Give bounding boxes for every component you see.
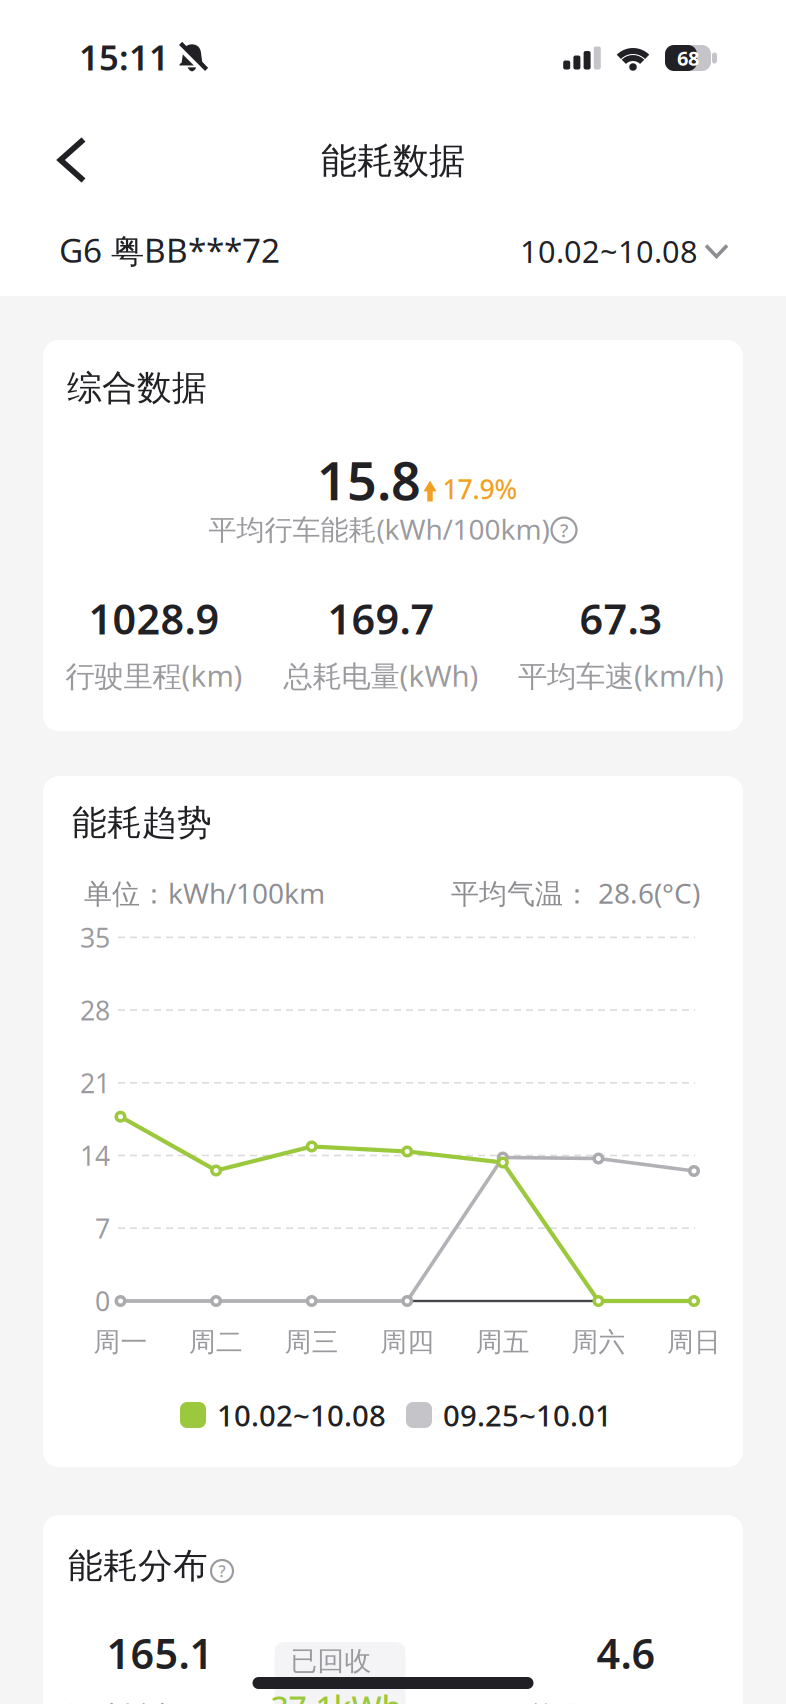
staticText: 周五: [476, 1326, 530, 1358]
staticText: 周日: [667, 1326, 721, 1358]
staticText: 总耗电量(kWh): [283, 656, 478, 695]
staticText: 能耗数据: [321, 139, 465, 183]
staticText: 平均行车能耗(kWh/100km): [208, 510, 549, 548]
staticText: 21: [80, 1065, 110, 1100]
staticText: 165.1: [106, 1626, 213, 1680]
staticText: 周六: [571, 1326, 625, 1358]
staticText: 4.6: [596, 1626, 655, 1680]
staticText: 能耗分布: [68, 1545, 208, 1587]
staticText: 周三: [285, 1326, 339, 1358]
staticText: 14: [80, 1138, 110, 1173]
staticText: 行驶里程(km): [65, 656, 242, 695]
staticText: 能耗趋势: [72, 802, 212, 844]
staticText: 169.7: [327, 591, 434, 646]
staticText: 单位：kWh/100km: [84, 874, 325, 912]
staticText: 已回收: [290, 1645, 371, 1677]
button[interactable]: 说明: [211, 1560, 233, 1582]
staticText: 10.02~10.08: [217, 1395, 386, 1434]
staticText: 0: [95, 1283, 110, 1319]
staticText: 10.02~10.08: [520, 231, 698, 271]
button[interactable]: 10.02~10.08: [407, 231, 727, 271]
staticText: 行驶耗电(kWh): [62, 1696, 257, 1704]
staticText: ?: [560, 518, 568, 542]
staticText: G6 粤BB***72: [59, 228, 280, 272]
staticText: 35: [80, 920, 110, 955]
staticText: 17.9%: [442, 471, 517, 507]
staticText: 68: [677, 45, 699, 71]
staticText: ?: [218, 1560, 225, 1582]
staticText: 1028.9: [88, 591, 219, 646]
staticText: 综合数据: [67, 367, 207, 409]
button[interactable]: 说明: [551, 517, 576, 542]
staticText: 15.8: [317, 445, 421, 515]
staticText: 37.1kWh: [270, 1686, 401, 1704]
staticText: 周一: [93, 1326, 147, 1358]
staticText: 67.3: [579, 591, 662, 646]
staticText: 09.25~10.01: [443, 1395, 612, 1434]
staticText: 周二: [189, 1326, 243, 1358]
staticText: 周四: [380, 1326, 434, 1358]
staticText: 28: [80, 992, 110, 1028]
button[interactable]: Back: [48, 127, 95, 192]
staticText: 15:11: [79, 34, 169, 80]
staticText: 平均车速(km/h): [518, 656, 724, 695]
staticText: 平均气温： 28.6(°C): [451, 874, 700, 912]
staticText: 7: [95, 1210, 110, 1246]
